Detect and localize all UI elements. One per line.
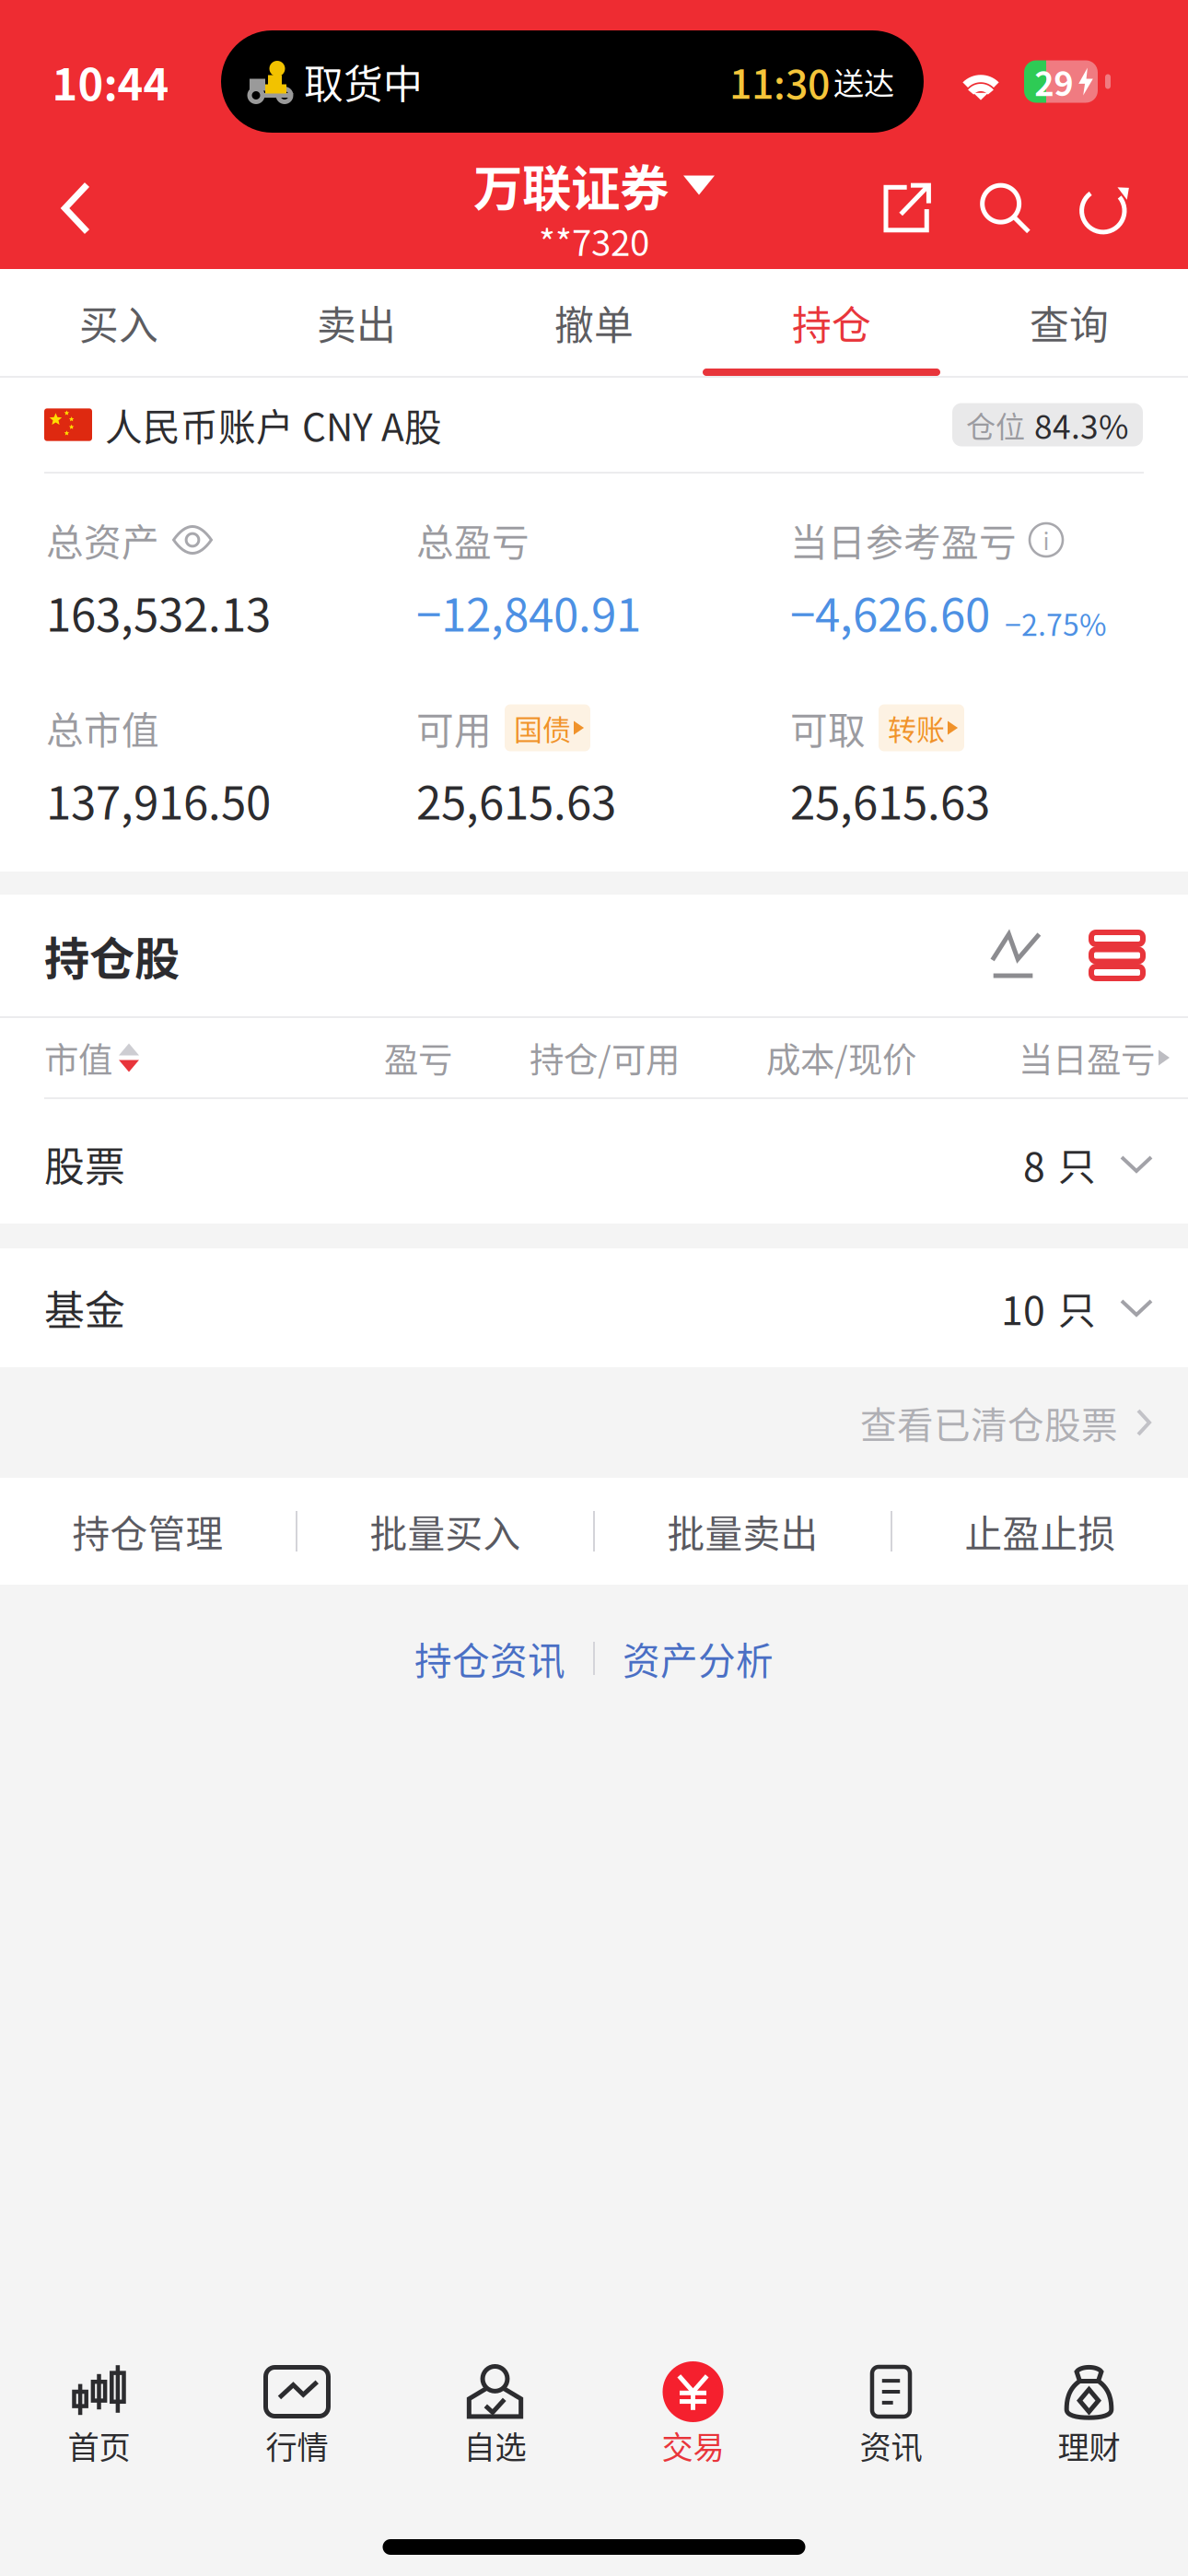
button[interactable]: 持仓 (713, 269, 950, 376)
staticText: 批量买入 (370, 1504, 521, 1558)
staticText: 资讯 (860, 2422, 922, 2468)
button[interactable]: Refresh (1055, 181, 1156, 235)
staticText: 转账 (888, 707, 945, 748)
button[interactable]: Search (955, 181, 1055, 235)
staticText: 25,615.63 (416, 767, 616, 833)
staticText: 卖出 (317, 294, 396, 351)
staticText: 止盈止损 (965, 1504, 1116, 1558)
staticText: 资产分析 (623, 1631, 774, 1685)
button[interactable]: 撤单 (475, 269, 713, 376)
staticText: 交易 (662, 2422, 724, 2468)
button[interactable]: 资讯 (792, 2322, 990, 2502)
staticText: −12,840.91 (416, 579, 641, 645)
button[interactable]: 行情 (198, 2322, 396, 2502)
button[interactable]: Share (855, 181, 955, 235)
staticText: 持仓股 (44, 923, 180, 988)
button[interactable]: 持仓管理 (0, 1478, 296, 1585)
button[interactable]: 资产分析 (595, 1614, 801, 1703)
staticText: 万联证券 (473, 150, 669, 221)
button[interactable]: 自选 (396, 2322, 594, 2502)
staticText: 理财 (1058, 2422, 1120, 2468)
staticText: 84.3% (1034, 401, 1129, 448)
button[interactable]: List view (1066, 905, 1168, 1006)
button[interactable]: 理财 (990, 2322, 1188, 2502)
button[interactable]: 万联证券 (382, 133, 806, 269)
button[interactable]: 买入 (0, 269, 238, 376)
staticText: 8 (1023, 1136, 1045, 1193)
button[interactable]: 批量卖出 (595, 1478, 891, 1585)
staticText: 首页 (68, 2422, 130, 2468)
staticText: 持仓管理 (72, 1504, 223, 1558)
staticText: 买入 (79, 294, 158, 351)
staticText: 持仓 (792, 294, 871, 351)
staticText: 29 (1034, 57, 1073, 106)
staticText: 163,532.13 (46, 579, 271, 645)
staticText: 当日盈亏 (1019, 1033, 1155, 1083)
staticText: 送达 (833, 59, 894, 104)
staticText: 总市值 (46, 701, 159, 755)
staticText: −2.75% (1005, 602, 1107, 645)
button[interactable]: 基金 (0, 1248, 1188, 1367)
staticText: 可取 (790, 701, 866, 755)
button[interactable]: 批量买入 (297, 1478, 593, 1585)
staticText: 查询 (1030, 294, 1109, 351)
button[interactable]: 查看已清仓股票 (0, 1367, 1188, 1478)
staticText: 只 (1058, 1137, 1096, 1191)
staticText: 市值 (44, 1033, 112, 1083)
staticText: 取货中 (304, 53, 423, 110)
staticText: 11:30 (729, 53, 830, 110)
staticText: 持仓资讯 (414, 1631, 565, 1685)
staticText: 盈亏 (384, 1033, 452, 1083)
staticText: 行情 (266, 2422, 328, 2468)
staticText: 137,916.50 (46, 767, 271, 833)
button[interactable]: Chart view (965, 905, 1066, 1006)
staticText: 总盈亏 (416, 513, 530, 567)
staticText: 成本/现价 (766, 1033, 916, 1083)
staticText: 股票 (44, 1135, 125, 1193)
button[interactable]: 查询 (950, 269, 1188, 376)
button[interactable]: 止盈止损 (892, 1478, 1188, 1585)
button[interactable]: Back (0, 181, 152, 235)
staticText: 10:44 (52, 50, 169, 113)
staticText: i (1043, 523, 1049, 557)
button[interactable]: 股票 (0, 1105, 1188, 1224)
staticText: 10 (1001, 1279, 1045, 1336)
staticText: 国债 (514, 707, 571, 748)
staticText: 仓位 (966, 403, 1025, 446)
staticText: 总资产 (46, 513, 159, 567)
staticText: 人民币账户 CNY A股 (105, 398, 442, 452)
button[interactable]: 交易 (594, 2322, 792, 2502)
staticText: 持仓/可用 (530, 1033, 680, 1083)
button[interactable]: 卖出 (238, 269, 475, 376)
staticText: 基金 (44, 1279, 125, 1337)
staticText: −4,626.60 (790, 579, 990, 645)
staticText: **7320 (539, 215, 649, 266)
button[interactable]: 持仓资讯 (387, 1614, 593, 1703)
button[interactable]: 首页 (0, 2322, 198, 2502)
staticText: 批量卖出 (667, 1504, 818, 1558)
staticText: 查看已清仓股票 (860, 1396, 1118, 1449)
staticText: 自选 (464, 2422, 526, 2468)
staticText: 当日参考盈亏 (790, 513, 1017, 567)
staticText: 只 (1058, 1281, 1096, 1335)
staticText: 25,615.63 (790, 767, 990, 833)
staticText: 可用 (416, 701, 492, 755)
staticText: 撤单 (554, 294, 634, 351)
